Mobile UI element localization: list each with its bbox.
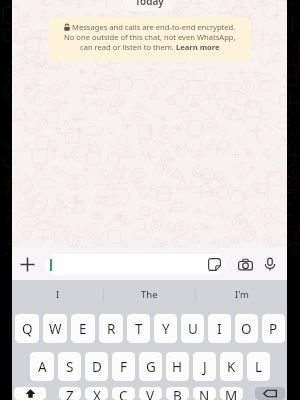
staticText: G <box>146 358 156 376</box>
button[interactable]: Camera <box>234 253 256 275</box>
button[interactable]: D <box>85 352 108 381</box>
staticText: I <box>56 288 60 301</box>
button[interactable]: E <box>71 314 95 343</box>
button[interactable]: H <box>166 352 189 381</box>
staticText: L <box>255 358 263 376</box>
button[interactable]: I <box>12 280 103 308</box>
button[interactable]: V <box>139 387 162 400</box>
button[interactable]: The <box>104 280 195 308</box>
staticText: O <box>241 320 252 338</box>
button[interactable]: Z <box>59 387 81 400</box>
button[interactable]: U <box>181 314 204 343</box>
button[interactable]: Attach <box>16 253 38 275</box>
staticText: J <box>203 358 207 376</box>
staticText: Y <box>162 320 170 338</box>
button[interactable]: N <box>193 387 216 400</box>
staticText: The <box>141 288 158 301</box>
button[interactable]: S <box>58 352 81 381</box>
staticText: S <box>66 358 74 376</box>
staticText: M <box>225 387 238 400</box>
staticText: T <box>135 320 143 338</box>
staticText: E <box>79 320 87 338</box>
button[interactable]: O <box>235 314 258 343</box>
staticText: I <box>217 320 222 338</box>
staticText: Learn more <box>176 42 220 52</box>
button[interactable]: G <box>139 352 162 381</box>
button[interactable]: C <box>112 387 135 400</box>
button[interactable]: B <box>166 387 189 400</box>
button[interactable]: J <box>193 352 216 381</box>
button[interactable]: I'm <box>196 280 287 308</box>
staticText: F <box>120 358 128 376</box>
staticText: V <box>146 387 155 400</box>
staticText: C <box>119 387 128 400</box>
button[interactable]: Today <box>123 0 176 11</box>
button[interactable]: F <box>112 352 135 381</box>
button[interactable]: Backspace <box>255 387 285 400</box>
button[interactable]: A <box>30 352 54 381</box>
staticText: A <box>38 358 47 376</box>
button[interactable]: W <box>43 314 67 343</box>
staticText: Z <box>66 387 74 400</box>
staticText: Q <box>22 320 33 338</box>
button[interactable]: I <box>208 314 231 343</box>
button[interactable]: L <box>247 352 270 381</box>
staticText: Today <box>135 0 164 8</box>
button[interactable]: K <box>220 352 243 381</box>
staticText: X <box>93 387 101 400</box>
button[interactable]: Stickers <box>205 255 224 274</box>
staticText: D <box>92 358 102 376</box>
staticText: Messages and calls are end-to-end encryp… <box>72 22 236 32</box>
button[interactable]: P <box>262 314 285 343</box>
staticText: H <box>172 358 183 376</box>
button[interactable]: Q <box>15 314 39 343</box>
button[interactable]: Stickers <box>45 254 225 275</box>
button[interactable]: M <box>220 387 243 400</box>
staticText: N <box>199 387 210 400</box>
button[interactable]: Shift <box>14 387 46 400</box>
button[interactable]: Messages and calls are end-to-end encryp… <box>48 17 251 61</box>
button[interactable]: T <box>127 314 150 343</box>
button[interactable]: R <box>99 314 123 343</box>
button[interactable]: Voice message <box>259 253 281 275</box>
button[interactable]: Y <box>154 314 177 343</box>
staticText: P <box>269 320 278 338</box>
staticText: I'm <box>235 288 249 301</box>
button[interactable]: X <box>85 387 108 400</box>
staticText: B <box>173 387 182 400</box>
staticText: W <box>49 320 62 338</box>
staticText: K <box>227 358 236 376</box>
staticText: R <box>107 320 116 338</box>
staticText: U <box>188 320 198 338</box>
staticText: can read or listen to them. <box>80 42 176 52</box>
staticText: No one outside of this chat, not even Wh… <box>64 32 236 42</box>
